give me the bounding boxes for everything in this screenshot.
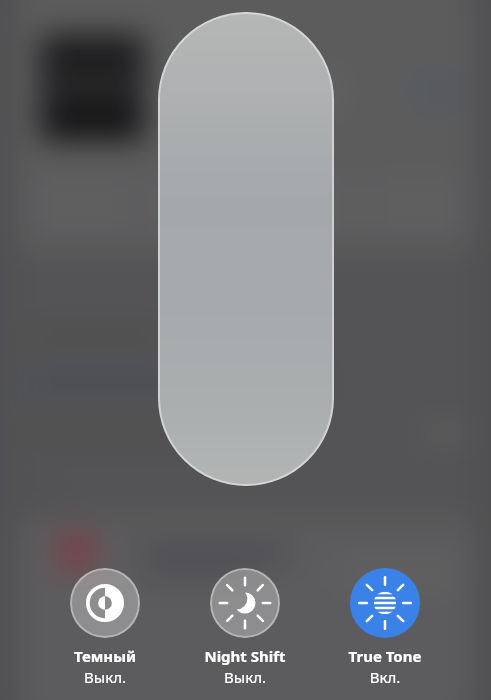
button[interactable]: Night Shift xyxy=(183,568,307,687)
staticText: Выкл. xyxy=(43,667,167,687)
staticText: Night Shift xyxy=(183,646,307,666)
staticText: Вкл. xyxy=(323,667,447,687)
staticText: True Tone xyxy=(323,646,447,666)
staticText: Темный xyxy=(43,646,167,666)
button[interactable]: Brightness slider xyxy=(158,12,334,486)
button[interactable]: True Tone xyxy=(323,568,447,687)
button[interactable]: Dark mode xyxy=(43,568,167,687)
staticText: Выкл. xyxy=(183,667,307,687)
